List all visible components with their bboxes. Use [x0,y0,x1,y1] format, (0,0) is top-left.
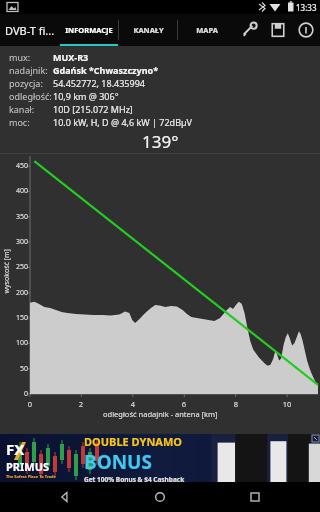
staticText: 300 [4,237,28,247]
staticText: 54.452772, 18.435994 [53,77,145,89]
staticText: 250 [4,262,28,272]
staticText: 6 [172,399,196,409]
staticText: 0 [18,399,42,409]
staticText: 10,9 km @ 306° [53,90,119,102]
staticText: nadajnik: [9,64,53,76]
staticText: 50 [4,364,28,374]
staticText: 450 [4,161,28,171]
staticText: pozycja: [9,77,53,89]
staticText: BONUS [84,449,152,475]
staticText: Gdańsk *Chwaszczyno* [53,64,159,76]
staticText: 350 [4,212,28,222]
staticText: 400 [4,186,28,196]
staticText: FX [6,439,25,459]
staticText: 8 [224,399,248,409]
staticText: 4 [121,399,145,409]
staticText: kanał: [9,103,53,115]
button[interactable]: Settings [236,14,264,46]
staticText: KANAŁY [133,25,164,35]
staticText: 150 [4,313,28,323]
staticText: MAPA [196,25,218,35]
staticText: 10D [215.072 MHz] [53,103,133,115]
staticText: INFORMACJE [65,25,113,35]
button[interactable]: Info [292,14,320,46]
button[interactable]: KANAŁY [119,14,177,46]
button[interactable]: Recents [225,482,285,512]
staticText: odległość: [9,90,53,102]
staticText: 2 [69,399,93,409]
button[interactable]: MAPA [178,14,236,46]
staticText: odległość nadajnik - antena [km] [103,409,218,419]
button[interactable]: Advertisement [0,434,320,482]
staticText: DVB-T fi... [5,23,55,38]
staticText: mux: [9,51,53,63]
button[interactable]: Home [130,482,190,512]
staticText: 0 [4,389,28,399]
staticText: MUX-R3 [53,51,89,63]
staticText: PRIMUS [6,459,50,474]
staticText: DOUBLE DYNAMO [84,434,183,449]
button[interactable]: Save [264,14,292,46]
button[interactable]: INFORMACJE [60,14,118,46]
staticText: 200 [4,288,28,298]
staticText: Get 100% Bonus & $4 Cashback [84,475,185,482]
staticText: moc: [9,116,53,128]
staticText: 13:33 [296,2,317,13]
staticText: 139° [142,130,179,153]
staticText: wysokość [m] [1,248,11,293]
staticText: 10.0 kW, H, D @ 4,6 kW | 72dBµV [53,116,192,128]
button[interactable]: Back [35,482,95,512]
staticText: 100 [4,338,28,348]
button[interactable]: DVB-T fi... [0,14,60,46]
staticText: The Safest Place To Trade [6,474,56,479]
staticText: 10 [275,399,299,409]
